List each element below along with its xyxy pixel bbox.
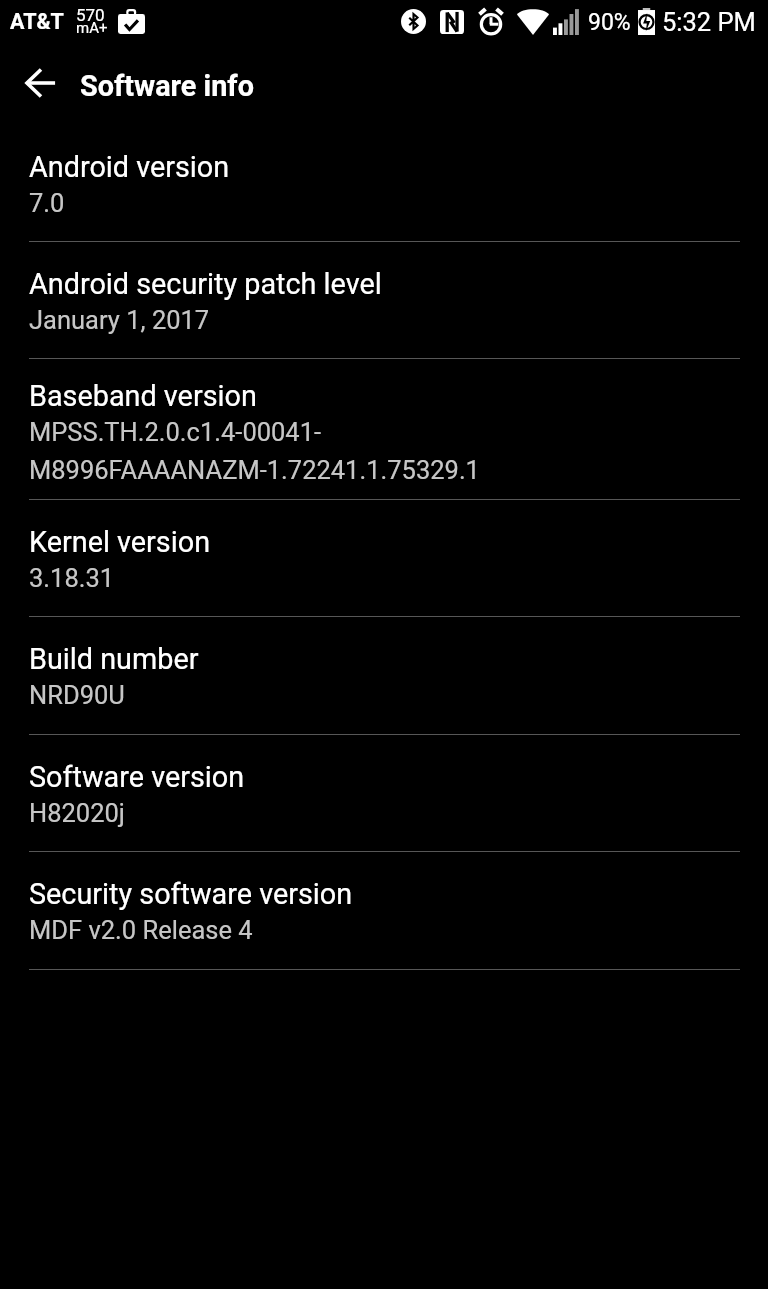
button[interactable]: Baseband version xyxy=(0,359,768,499)
button[interactable]: Security software version xyxy=(0,852,768,969)
staticText: Software version xyxy=(29,760,245,794)
button[interactable]: Build number xyxy=(0,617,768,734)
staticText: Android version xyxy=(29,150,230,184)
staticText: 3.18.31 xyxy=(29,563,115,593)
staticText: Security software version xyxy=(29,877,353,911)
staticText: M8996FAAAANAZM-1.72241.1.75329.1 xyxy=(29,455,480,485)
staticText: AT&T xyxy=(10,9,64,34)
staticText: mA+ xyxy=(76,19,108,37)
staticText: 7.0 xyxy=(29,188,65,218)
staticText: NRD90U xyxy=(29,680,125,710)
button[interactable]: Android version xyxy=(0,125,768,241)
staticText: January 1, 2017 xyxy=(29,305,210,335)
button[interactable]: Back xyxy=(9,55,72,111)
staticText: Android security patch level xyxy=(29,267,382,301)
staticText: 5:32 PM xyxy=(662,7,756,37)
staticText: Baseband version xyxy=(29,379,257,413)
staticText: 570 xyxy=(76,5,105,25)
button[interactable]: Android security patch level xyxy=(0,242,768,359)
staticText: MDF v2.0 Release 4 xyxy=(29,915,253,945)
button[interactable]: Kernel version xyxy=(0,500,768,616)
staticText: Kernel version xyxy=(29,525,211,559)
staticText: Build number xyxy=(29,642,199,676)
staticText: MPSS.TH.2.0.c1.4-00041- xyxy=(29,417,322,447)
staticText: Software info xyxy=(80,69,254,103)
staticText: H82020j xyxy=(29,798,125,828)
button[interactable]: Software version xyxy=(0,735,768,851)
staticText: 90% xyxy=(588,9,631,36)
